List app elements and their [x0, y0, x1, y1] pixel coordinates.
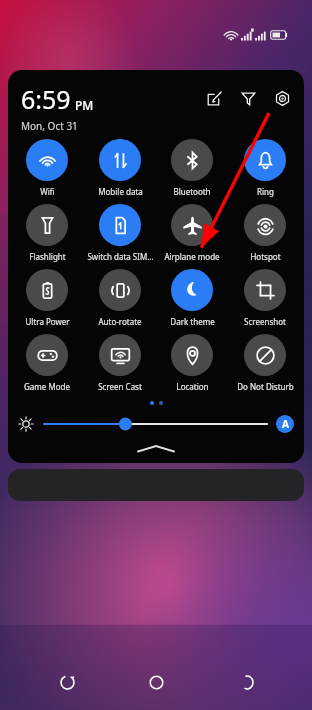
staticText: Auto-rotate [98, 316, 142, 327]
button[interactable]: Hotspot [229, 204, 301, 262]
button[interactable]: Flashlight [11, 204, 83, 262]
staticText: Airplane mode [164, 251, 220, 262]
staticText: Ultra Power [25, 316, 70, 327]
button[interactable]: Settings [271, 87, 293, 109]
button[interactable]: Switch data SIM… [84, 204, 156, 262]
button[interactable]: Screenshot [229, 269, 301, 327]
staticText: PM [75, 97, 94, 113]
button[interactable]: Ring [229, 139, 301, 197]
staticText: Switch data SIM… [87, 251, 154, 262]
button[interactable]: Recents [44, 659, 90, 705]
button[interactable]: Back [223, 659, 269, 705]
staticText: Bluetooth [173, 186, 211, 197]
button[interactable]: Location [156, 334, 228, 392]
staticText: A [282, 417, 289, 431]
staticText: Hotspot [250, 251, 281, 262]
staticText: Location [176, 381, 209, 392]
button[interactable]: Dark theme [156, 269, 228, 327]
button[interactable]: Brightness slider [44, 415, 267, 433]
staticText: 6:59 [21, 82, 71, 116]
button[interactable]: Wifi [11, 139, 83, 197]
staticText: Screenshot [244, 316, 286, 327]
button[interactable]: Collapse [138, 445, 174, 453]
button[interactable]: Screen Cast [84, 334, 156, 392]
staticText: Flashlight [29, 251, 66, 262]
staticText: Screen Cast [98, 381, 142, 392]
staticText: Mobile data [98, 186, 143, 197]
staticText: Ring [257, 186, 274, 197]
button[interactable]: Mobile data [84, 139, 156, 197]
button[interactable]: Filter [237, 87, 259, 109]
button[interactable]: A [276, 415, 294, 433]
staticText: Dark theme [170, 316, 215, 327]
staticText: Game Mode [24, 381, 70, 392]
button[interactable]: Auto-rotate [84, 269, 156, 327]
button[interactable] [8, 469, 304, 501]
button[interactable]: Home [133, 659, 179, 705]
button[interactable]: Bluetooth [156, 139, 228, 197]
staticText: Mon, Oct 31 [21, 119, 78, 133]
button[interactable]: Edit [203, 87, 225, 109]
button[interactable]: Ultra Power [11, 269, 83, 327]
staticText: Wifi [40, 186, 55, 197]
button[interactable]: Do Not Disturb [229, 334, 301, 392]
button[interactable]: Airplane mode [156, 204, 228, 262]
staticText: Do Not Disturb [237, 381, 294, 392]
button[interactable]: Brightness [18, 416, 34, 432]
button[interactable]: Game Mode [11, 334, 83, 392]
